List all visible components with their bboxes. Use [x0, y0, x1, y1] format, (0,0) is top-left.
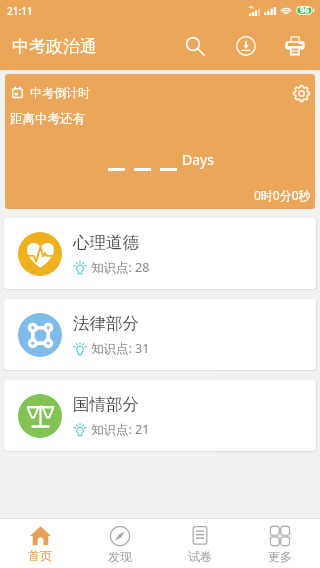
staticText: 96 [300, 4, 310, 15]
staticText: 试卷 [188, 549, 212, 564]
staticText: 中考倒计时 [30, 85, 90, 100]
staticText: 知识点: 28 [91, 259, 150, 276]
staticText: 中考政治通 [12, 36, 97, 57]
button[interactable]: Print [271, 22, 319, 70]
staticText: 知识点: 31 [91, 340, 150, 357]
button[interactable]: Search [171, 22, 219, 70]
staticText: 知识点: 21 [91, 421, 150, 438]
button[interactable]: 中考倒计时 [5, 74, 315, 209]
staticText: 心理道德 [73, 232, 139, 253]
button[interactable]: Settings [289, 81, 313, 105]
staticText: 更多 [268, 549, 292, 564]
staticText: 首页 [28, 548, 52, 563]
staticText: 发现 [108, 549, 132, 564]
button[interactable]: 首页 [0, 519, 80, 568]
staticText: 法律部分 [73, 313, 139, 334]
button[interactable]: 发现 [80, 519, 160, 568]
button[interactable]: 试卷 [160, 519, 240, 568]
staticText: 0时0分0秒 [254, 187, 311, 203]
staticText: Days [182, 150, 214, 169]
staticText: 21:11 [7, 4, 33, 18]
button[interactable]: 心理道德 [4, 218, 316, 289]
button[interactable]: Download [222, 22, 270, 70]
button[interactable]: 法律部分 [4, 299, 316, 370]
staticText: 距离中考还有 [10, 111, 85, 127]
staticText: 国情部分 [73, 394, 139, 415]
button[interactable]: 国情部分 [4, 380, 316, 451]
button[interactable]: 更多 [240, 519, 320, 568]
